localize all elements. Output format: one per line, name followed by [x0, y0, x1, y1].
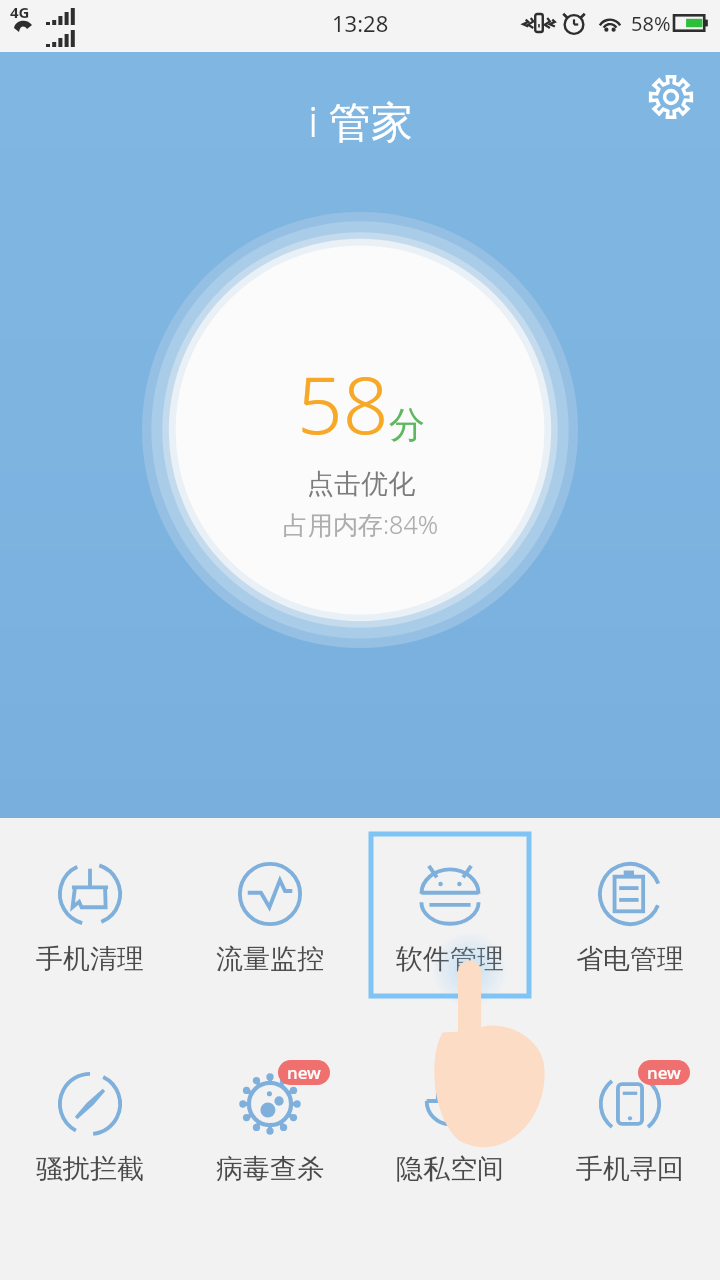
staticText: 13:28: [332, 8, 389, 38]
staticText: 点击优化: [307, 467, 415, 501]
staticText: 分: [389, 402, 425, 447]
staticText: 占用内存:84%: [283, 507, 438, 541]
button[interactable]: 流量监控: [191, 834, 349, 996]
staticText: 骚扰拦截: [36, 1152, 144, 1186]
button[interactable]: 省电管理: [551, 834, 709, 996]
staticText: new: [647, 1061, 681, 1084]
staticText: 手机寻回: [576, 1152, 684, 1186]
staticText: 手机清理: [36, 942, 144, 976]
button[interactable]: 骚扰拦截: [11, 1044, 169, 1206]
button[interactable]: Settings: [640, 66, 702, 128]
staticText: 软件管理: [396, 942, 504, 976]
staticText: 病毒查杀: [216, 1152, 324, 1186]
staticText: new: [287, 1061, 321, 1084]
button[interactable]: 隐私空间: [371, 1044, 529, 1206]
button[interactable]: 手机清理: [11, 834, 169, 996]
staticText: 隐私空间: [396, 1152, 504, 1186]
staticText: 58%: [631, 10, 671, 37]
button[interactable]: new: [191, 1044, 349, 1206]
staticText: 省电管理: [576, 942, 684, 976]
staticText: 58: [297, 348, 389, 457]
button[interactable]: new: [551, 1044, 709, 1206]
staticText: i 管家: [308, 92, 413, 149]
staticText: 流量监控: [216, 942, 324, 976]
staticText: 4G: [10, 2, 30, 22]
button[interactable]: 58: [142, 212, 578, 648]
button[interactable]: 软件管理: [371, 834, 529, 996]
